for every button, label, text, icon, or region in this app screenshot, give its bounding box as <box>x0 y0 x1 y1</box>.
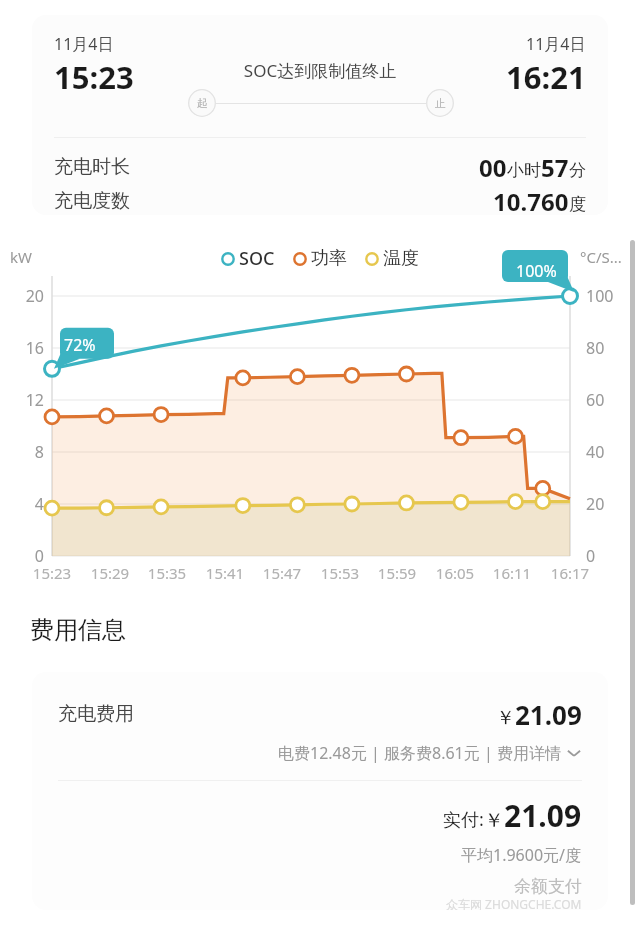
staticText: kW <box>10 247 32 267</box>
staticText: 16:21 <box>506 56 586 98</box>
button[interactable]: 11月4日 <box>32 15 608 215</box>
staticText: 11月4日 <box>526 33 586 55</box>
staticText: 平均1.9600元/度 <box>461 844 582 866</box>
staticText: 80 <box>586 337 605 359</box>
staticText: °C/S... <box>580 247 622 267</box>
staticText: 功率 <box>311 247 347 270</box>
staticText: ￥ <box>484 808 504 833</box>
staticText: 21.09 <box>515 697 582 732</box>
staticText: 8 <box>8 441 44 463</box>
staticText: 15:23 <box>54 56 134 98</box>
staticText: 21.09 <box>504 795 582 836</box>
staticText: 15:35 <box>137 563 197 583</box>
staticText: 温度 <box>383 247 419 270</box>
staticText: 15:53 <box>310 563 370 583</box>
staticText: 12 <box>8 389 44 411</box>
staticText: 0 <box>8 545 44 567</box>
staticText: 分 <box>569 160 586 181</box>
staticText: 15:41 <box>195 563 255 583</box>
staticText: 4 <box>8 493 44 515</box>
staticText: 众车网 ZHONGCHE.COM <box>446 896 582 910</box>
staticText: 15:47 <box>252 563 312 583</box>
staticText: 止 <box>435 96 446 110</box>
other: 展开费用详情 <box>566 745 582 761</box>
staticText: ￥ <box>496 706 515 730</box>
staticText: 11月4日 <box>54 33 114 55</box>
staticText: 100 <box>586 285 614 307</box>
staticText: 小时 <box>507 160 541 181</box>
staticText: 60 <box>586 389 605 411</box>
staticText: 72% <box>64 334 96 356</box>
staticText: 16:17 <box>540 563 600 583</box>
staticText: 100% <box>516 260 557 282</box>
staticText: 16 <box>8 337 44 359</box>
staticText: 余额支付 <box>514 876 582 897</box>
button[interactable]: 充电费用 <box>32 672 608 910</box>
staticText: 16:05 <box>425 563 485 583</box>
staticText: 度 <box>569 194 586 215</box>
staticText: SOC <box>239 246 275 271</box>
staticText: 0 <box>586 545 596 567</box>
staticText: SOC达到限制值终止 <box>200 59 440 82</box>
button[interactable]: 充电时长 <box>54 151 586 183</box>
staticText: 16:11 <box>482 563 542 583</box>
staticText: 20 <box>8 285 44 307</box>
staticText: 10.760 <box>493 185 569 215</box>
staticText: 15:23 <box>22 563 82 583</box>
staticText: 20 <box>586 493 605 515</box>
staticText: 费用信息 <box>30 615 126 645</box>
staticText: 充电费用 <box>58 702 134 726</box>
staticText: 40 <box>586 441 605 463</box>
staticText: 充电时长 <box>54 155 130 179</box>
staticText: 充电度数 <box>54 189 130 213</box>
staticText: 起 <box>197 96 208 110</box>
button[interactable]: 充电度数 <box>54 185 586 215</box>
staticText: 57 <box>541 151 569 183</box>
staticText: 15:59 <box>367 563 427 583</box>
staticText: 电费12.48元 | 服务费8.61元 | 费用详情 <box>278 742 561 764</box>
staticText: 00 <box>479 151 507 183</box>
staticText: 实付: <box>443 807 484 832</box>
staticText: 15:29 <box>80 563 140 583</box>
button[interactable]: 电费12.48元 | 服务费8.61元 | 费用详情 <box>58 738 582 768</box>
